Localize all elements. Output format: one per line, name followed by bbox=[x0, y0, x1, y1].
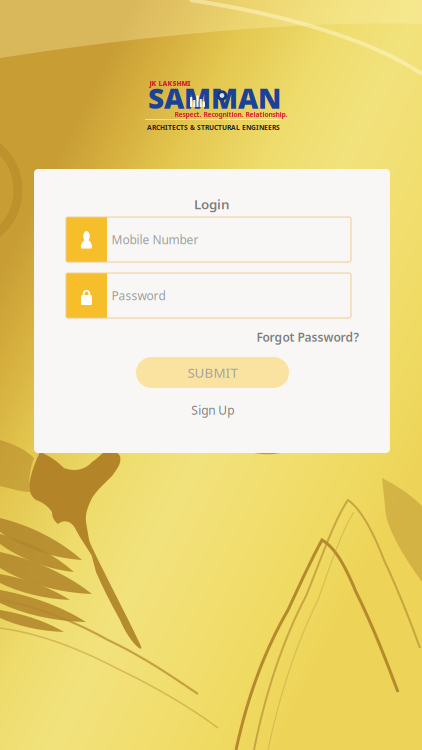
staticText: Respect. Recognition. Relationship. bbox=[174, 110, 287, 119]
staticText: ARCHITECTS & STRUCTURAL ENGINEERS bbox=[147, 123, 280, 132]
button[interactable]: SUBMIT bbox=[136, 357, 289, 388]
staticText: SUBMIT bbox=[187, 364, 237, 381]
button[interactable]: Sign Up bbox=[191, 402, 234, 418]
button[interactable]: Password bbox=[66, 273, 351, 318]
button[interactable]: Mobile Number bbox=[66, 217, 351, 262]
staticText: Password bbox=[111, 287, 165, 303]
staticText: SAMMAN bbox=[148, 79, 281, 117]
staticText: JK LAKSHMI bbox=[149, 79, 190, 88]
staticText: Sign Up bbox=[191, 402, 234, 418]
staticText: Forgot Password? bbox=[256, 329, 359, 345]
staticText: Login bbox=[194, 195, 230, 213]
button[interactable]: Forgot Password? bbox=[256, 329, 359, 345]
staticText: Mobile Number bbox=[111, 231, 198, 247]
